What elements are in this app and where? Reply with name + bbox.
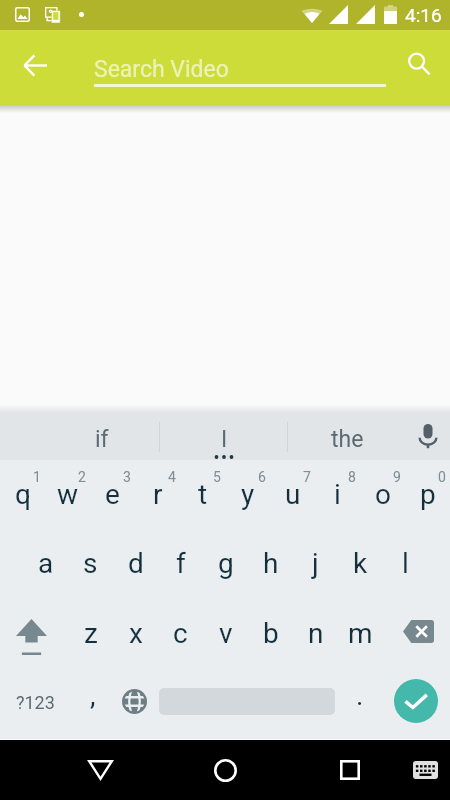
button[interactable]: g bbox=[203, 530, 248, 600]
button[interactable]: j bbox=[293, 530, 338, 600]
button[interactable]: a bbox=[23, 530, 68, 600]
staticText: 4:16 bbox=[405, 4, 442, 26]
button[interactable]: 8 bbox=[315, 460, 360, 530]
staticText: 5 bbox=[213, 469, 221, 485]
button[interactable]: 9 bbox=[360, 460, 405, 530]
button[interactable]: Space bbox=[154, 666, 340, 736]
button[interactable]: . bbox=[340, 666, 380, 736]
button[interactable]: h bbox=[248, 530, 293, 600]
button[interactable]: 0 bbox=[405, 460, 450, 530]
button[interactable]: z bbox=[68, 599, 113, 669]
staticText: . bbox=[356, 679, 364, 712]
staticText: m bbox=[348, 617, 373, 650]
staticText: Search Video bbox=[94, 56, 229, 83]
button[interactable]: 1 bbox=[0, 460, 45, 530]
staticText: l bbox=[402, 547, 409, 580]
staticText: j bbox=[312, 547, 319, 580]
staticText: ?123 bbox=[16, 692, 55, 713]
button[interactable]: Switch keyboard bbox=[395, 740, 450, 800]
button[interactable]: Search bbox=[394, 39, 444, 89]
button[interactable]: Backspace bbox=[383, 599, 450, 669]
staticText: r bbox=[153, 478, 163, 511]
staticText: f bbox=[176, 547, 186, 580]
staticText: 9 bbox=[393, 469, 401, 485]
staticText: t bbox=[198, 478, 208, 511]
button[interactable]: Voice input bbox=[405, 411, 450, 460]
button[interactable]: Change language bbox=[114, 666, 154, 736]
staticText: 3 bbox=[123, 469, 131, 485]
button[interactable]: 3 bbox=[90, 460, 135, 530]
button[interactable]: Navigate up bbox=[10, 40, 60, 90]
staticText: if bbox=[95, 426, 109, 453]
button[interactable]: 4 bbox=[135, 460, 180, 530]
button[interactable]: if bbox=[52, 411, 152, 460]
staticText: a bbox=[38, 547, 54, 580]
staticText: p bbox=[420, 478, 436, 511]
button[interactable]: Back bbox=[70, 740, 130, 800]
staticText: v bbox=[219, 617, 233, 650]
button[interactable]: I bbox=[174, 411, 274, 460]
button[interactable]: n bbox=[293, 599, 338, 669]
button[interactable]: 5 bbox=[180, 460, 225, 530]
button[interactable]: f bbox=[158, 530, 203, 600]
button[interactable]: c bbox=[158, 599, 203, 669]
button[interactable]: the bbox=[297, 411, 397, 460]
staticText: z bbox=[84, 617, 98, 650]
button[interactable]: 6 bbox=[225, 460, 270, 530]
button[interactable]: m bbox=[338, 599, 383, 669]
staticText: e bbox=[105, 478, 120, 511]
staticText: I bbox=[221, 426, 228, 453]
staticText: s bbox=[83, 547, 98, 580]
staticText: x bbox=[129, 617, 143, 650]
staticText: 7 bbox=[303, 469, 311, 485]
staticText: 2 bbox=[78, 469, 86, 485]
button[interactable]: , bbox=[69, 666, 114, 736]
staticText: b bbox=[263, 617, 279, 650]
staticText: 4 bbox=[168, 469, 176, 485]
staticText: c bbox=[173, 617, 188, 650]
button[interactable]: l bbox=[383, 530, 428, 600]
staticText: g bbox=[218, 547, 234, 580]
staticText: q bbox=[15, 478, 31, 511]
staticText: y bbox=[241, 478, 255, 511]
staticText: k bbox=[353, 547, 368, 580]
button[interactable]: 2 bbox=[45, 460, 90, 530]
staticText: n bbox=[308, 617, 324, 650]
button[interactable]: b bbox=[248, 599, 293, 669]
staticText: d bbox=[128, 547, 144, 580]
staticText: 8 bbox=[348, 469, 356, 485]
button[interactable]: k bbox=[338, 530, 383, 600]
button[interactable]: ?123 bbox=[0, 666, 69, 736]
button[interactable]: Recent apps bbox=[320, 740, 380, 800]
staticText: 6 bbox=[258, 469, 266, 485]
staticText: the bbox=[331, 426, 364, 453]
button[interactable]: v bbox=[203, 599, 248, 669]
button[interactable]: Home bbox=[195, 740, 255, 800]
staticText: u bbox=[285, 478, 301, 511]
button[interactable]: Shift bbox=[0, 599, 67, 669]
button[interactable]: Enter bbox=[380, 666, 450, 736]
button[interactable]: d bbox=[113, 530, 158, 600]
button[interactable]: s bbox=[68, 530, 113, 600]
staticText: 1 bbox=[33, 469, 41, 485]
staticText: w bbox=[57, 478, 79, 511]
staticText: i bbox=[334, 478, 341, 511]
staticText: h bbox=[263, 547, 279, 580]
staticText: o bbox=[375, 478, 391, 511]
staticText: , bbox=[90, 679, 96, 712]
button[interactable]: 7 bbox=[270, 460, 315, 530]
staticText: 0 bbox=[438, 469, 446, 485]
button[interactable]: x bbox=[113, 599, 158, 669]
